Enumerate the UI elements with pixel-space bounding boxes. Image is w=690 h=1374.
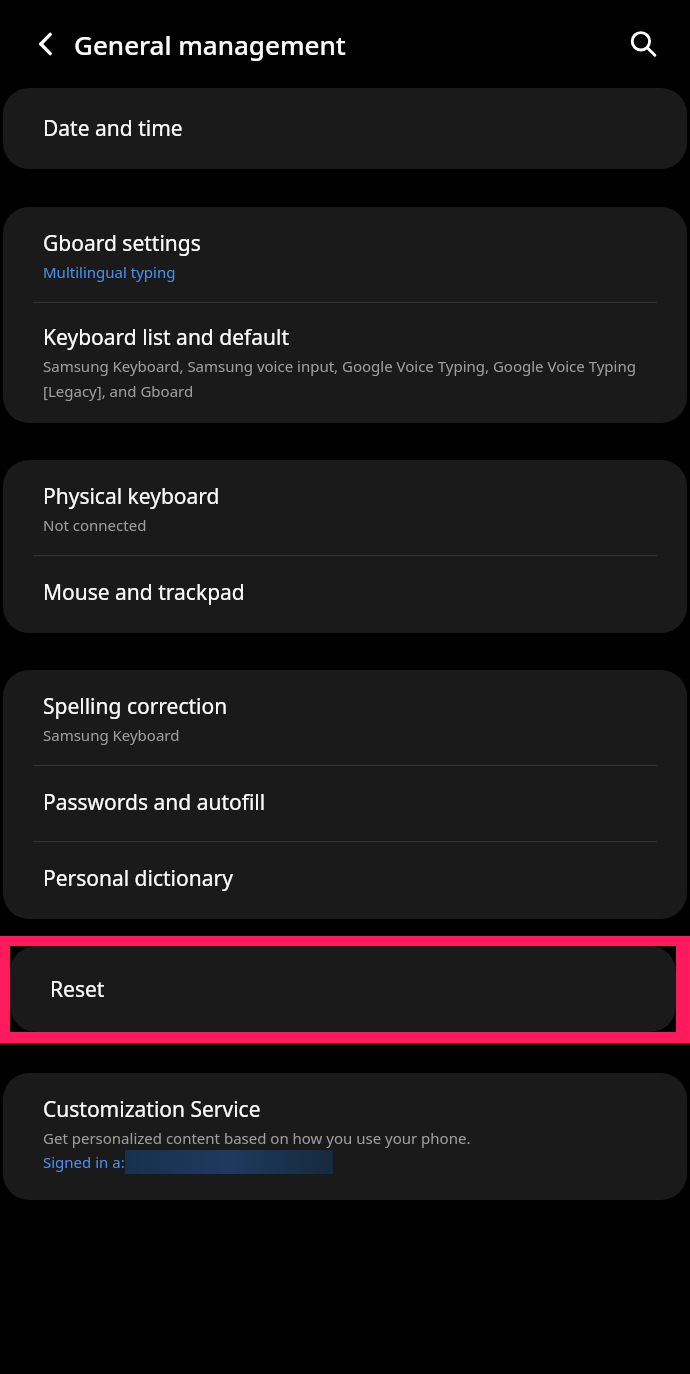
staticText: Multilingual typing	[43, 262, 176, 282]
button[interactable]: Mouse and trackpad	[3, 556, 687, 633]
staticText: Date and time	[43, 114, 183, 143]
button[interactable]: Personal dictionary	[3, 842, 687, 919]
staticText: Reset	[50, 975, 105, 1004]
button[interactable]: Back	[22, 20, 70, 68]
staticText: Physical keyboard	[43, 482, 220, 511]
button[interactable]: Gboard settings	[3, 207, 687, 302]
button[interactable]: Spelling correction	[3, 670, 687, 765]
staticText: Samsung Keyboard	[43, 725, 180, 745]
staticText: Gboard settings	[43, 229, 201, 258]
staticText: Not connected	[43, 515, 147, 535]
staticText: Customization Service	[43, 1095, 261, 1124]
button[interactable]: Search	[619, 20, 667, 68]
staticText: General management	[74, 27, 346, 62]
button[interactable]: Date and time	[3, 88, 687, 169]
staticText: Get personalized content based on how yo…	[43, 1128, 471, 1148]
staticText: Spelling correction	[43, 692, 228, 721]
staticText: Keyboard list and default	[43, 323, 289, 352]
button[interactable]: Customization Service	[3, 1073, 687, 1200]
button[interactable]: Reset	[10, 946, 676, 1032]
staticText: Passwords and autofill	[43, 788, 266, 817]
staticText: Signed in a:	[43, 1152, 125, 1172]
staticText: Personal dictionary	[43, 864, 233, 893]
button[interactable]: Keyboard list and default	[3, 303, 687, 423]
staticText: Samsung Keyboard, Samsung voice input, G…	[43, 356, 655, 401]
button[interactable]: Passwords and autofill	[3, 766, 687, 841]
button[interactable]: Physical keyboard	[3, 460, 687, 555]
staticText: Mouse and trackpad	[43, 578, 245, 607]
